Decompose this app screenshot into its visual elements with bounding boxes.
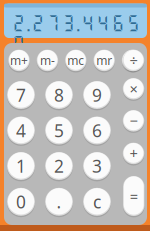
staticText: mc (67, 52, 84, 68)
button[interactable]: 9 (83, 80, 111, 110)
staticText: 2 (54, 154, 64, 177)
staticText: 7 (16, 83, 26, 106)
button[interactable]: 7 (7, 80, 35, 110)
button[interactable]: 8 (45, 80, 73, 110)
staticText: mr (96, 52, 112, 68)
staticText: 3 (92, 154, 102, 177)
staticText: 8 (54, 83, 64, 106)
staticText: × (129, 79, 137, 99)
button[interactable]: ÷ (122, 49, 143, 72)
button[interactable]: × (123, 77, 144, 100)
button[interactable]: mr (93, 49, 115, 72)
staticText: m- (40, 52, 55, 68)
staticText: 6 (92, 119, 102, 142)
button[interactable]: m- (37, 49, 58, 72)
button[interactable]: c (83, 187, 111, 217)
staticText: 2.273.44650 (12, 13, 150, 33)
button[interactable]: + (123, 142, 144, 165)
staticText: = (130, 186, 138, 206)
button[interactable]: 5 (45, 115, 73, 145)
staticText: 1 (16, 154, 26, 177)
button[interactable]: mc (65, 49, 86, 72)
staticText: 0 (16, 190, 26, 213)
staticText: + (129, 144, 137, 163)
button[interactable]: = (123, 175, 144, 217)
staticText: m+ (10, 52, 28, 68)
button[interactable]: 6 (83, 115, 111, 145)
button[interactable]: 3 (83, 151, 111, 181)
staticText: ÷ (129, 51, 137, 70)
button[interactable]: 4 (7, 115, 35, 145)
staticText: ÷ (129, 52, 136, 68)
staticText: . (56, 190, 61, 213)
button[interactable]: − (123, 109, 144, 132)
staticText: c (93, 190, 101, 213)
button[interactable]: . (45, 187, 73, 217)
staticText: 4 (16, 119, 26, 142)
staticText: 5 (54, 119, 64, 142)
staticText: 9 (92, 83, 102, 106)
button[interactable]: ÷ (123, 49, 144, 72)
button[interactable]: 1 (7, 151, 35, 181)
staticText: − (129, 111, 137, 131)
button[interactable]: m+ (8, 49, 30, 72)
button[interactable]: 0 (7, 187, 35, 217)
button[interactable]: 2 (45, 151, 73, 181)
